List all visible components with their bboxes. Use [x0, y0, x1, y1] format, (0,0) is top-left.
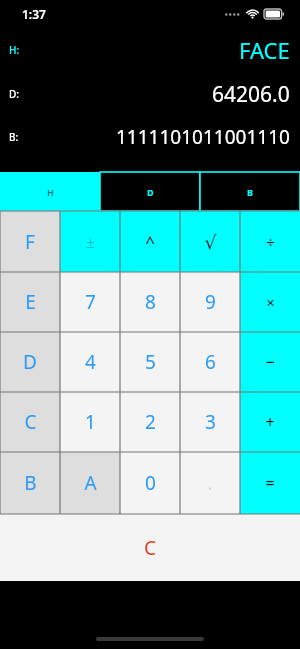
button[interactable]: 6	[180, 332, 240, 392]
button[interactable]: 7	[60, 272, 120, 332]
staticText: 0	[145, 470, 156, 496]
staticText: C	[24, 409, 37, 435]
staticText: √	[204, 231, 217, 253]
staticText: 1	[85, 409, 96, 435]
staticText: C	[144, 535, 157, 561]
button[interactable]: D	[100, 172, 200, 211]
staticText: 5	[145, 349, 156, 375]
staticText: .	[207, 470, 213, 496]
button[interactable]: 8	[120, 272, 180, 332]
staticText: D	[23, 349, 37, 375]
staticText: H:	[9, 43, 20, 57]
staticText: ±	[86, 232, 95, 252]
button[interactable]: ×	[240, 272, 300, 332]
button[interactable]: B	[200, 172, 300, 211]
button[interactable]: .	[180, 452, 240, 514]
staticText: 4	[85, 349, 96, 375]
button[interactable]: 1	[60, 392, 120, 452]
staticText: F	[25, 229, 35, 255]
button[interactable]: 9	[180, 272, 240, 332]
staticText: 64206.0	[212, 80, 290, 109]
button[interactable]: 4	[60, 332, 120, 392]
staticText: 7	[85, 289, 96, 315]
button[interactable]: 3	[180, 392, 240, 452]
button[interactable]: +	[240, 392, 300, 452]
staticText: 6	[205, 349, 216, 375]
button[interactable]: C	[0, 514, 300, 581]
button[interactable]: C	[0, 392, 60, 452]
button[interactable]: =	[240, 452, 300, 514]
button[interactable]: ÷	[240, 211, 300, 272]
staticText: H	[47, 186, 54, 198]
button[interactable]: D	[0, 332, 60, 392]
staticText: 2	[145, 409, 156, 435]
button[interactable]: 5	[120, 332, 180, 392]
staticText: B:	[9, 130, 19, 144]
staticText: ×	[266, 292, 275, 312]
staticText: A	[84, 470, 97, 496]
staticText: B	[24, 470, 37, 496]
staticText: 8	[145, 289, 156, 315]
button[interactable]: A	[60, 452, 120, 514]
staticText: =	[265, 472, 275, 494]
button[interactable]: H	[0, 172, 100, 211]
button[interactable]: B	[0, 452, 60, 514]
button[interactable]: −	[240, 332, 300, 392]
button[interactable]: ±	[60, 211, 120, 272]
button[interactable]: ^	[120, 211, 180, 272]
staticText: 1:37	[22, 6, 46, 22]
staticText: D:	[9, 87, 20, 101]
staticText: ÷	[266, 232, 275, 252]
button[interactable]: 2	[120, 392, 180, 452]
button[interactable]: E	[0, 272, 60, 332]
staticText: E	[25, 289, 36, 315]
staticText: 1111101011001110	[116, 124, 290, 150]
staticText: −	[265, 351, 275, 373]
staticText: D	[147, 186, 154, 198]
staticText: 3	[205, 409, 216, 435]
staticText: FACE	[239, 35, 290, 65]
staticText: B	[247, 186, 253, 198]
staticText: +	[265, 411, 275, 433]
staticText: 9	[205, 289, 216, 315]
button[interactable]: F	[0, 211, 60, 272]
staticText: ^	[145, 230, 155, 253]
button[interactable]: √	[180, 211, 240, 272]
button[interactable]: 0	[120, 452, 180, 514]
